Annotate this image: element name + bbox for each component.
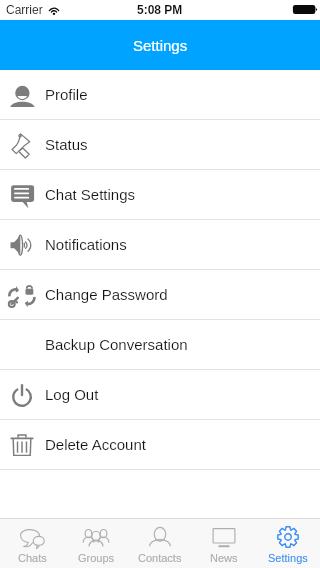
staticText: Chats [18, 552, 47, 564]
button[interactable]: Chat Settings [0, 170, 320, 219]
staticText: Settings [268, 552, 308, 564]
button[interactable]: Backup Conversation [0, 320, 320, 369]
staticText: Backup Conversation [45, 336, 188, 353]
button[interactable]: News [192, 519, 256, 568]
staticText: Contacts [138, 552, 182, 564]
button[interactable]: Settings [256, 519, 320, 568]
button[interactable]: Contacts [128, 519, 192, 568]
staticText: Settings [133, 37, 188, 54]
staticText: Chat Settings [45, 186, 136, 203]
staticText: News [210, 552, 238, 564]
button[interactable]: Groups [64, 519, 128, 568]
staticText: Notifications [45, 236, 127, 253]
staticText: Log Out [45, 386, 99, 403]
button[interactable]: Status [0, 120, 320, 169]
button[interactable]: Chats [0, 519, 64, 568]
button[interactable]: Change Password [0, 270, 320, 319]
button[interactable]: Delete Account [0, 420, 320, 469]
staticText: 5:08 PM [137, 3, 183, 16]
button[interactable]: Log Out [0, 370, 320, 419]
staticText: Status [45, 136, 88, 153]
staticText: Carrier [6, 3, 43, 16]
button[interactable]: Notifications [0, 220, 320, 269]
staticText: Profile [45, 86, 88, 103]
staticText: Change Password [45, 286, 168, 303]
staticText: Groups [78, 552, 115, 564]
button[interactable]: Profile [0, 70, 320, 119]
staticText: Delete Account [45, 436, 146, 453]
